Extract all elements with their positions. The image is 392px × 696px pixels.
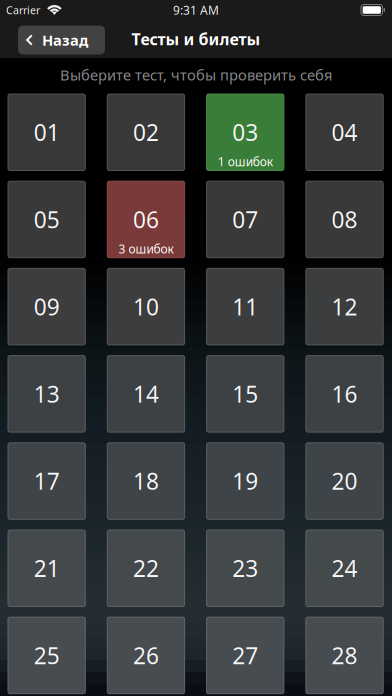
button[interactable]: 24 xyxy=(306,530,383,606)
button[interactable]: 03 xyxy=(207,94,284,170)
staticText: 22 xyxy=(133,553,159,583)
staticText: 18 xyxy=(133,466,159,496)
button[interactable]: 01 xyxy=(8,94,85,170)
staticText: 17 xyxy=(34,466,60,496)
staticText: 28 xyxy=(331,640,357,670)
staticText: Carrier xyxy=(6,3,40,17)
staticText: 21 xyxy=(34,553,60,583)
button[interactable]: 18 xyxy=(107,443,185,519)
button[interactable]: 14 xyxy=(107,356,185,432)
button[interactable]: 04 xyxy=(306,94,383,170)
staticText: Назад xyxy=(42,30,88,50)
button[interactable]: 09 xyxy=(8,268,85,345)
button[interactable]: 02 xyxy=(107,94,185,170)
button[interactable]: 16 xyxy=(306,356,383,432)
staticText: 15 xyxy=(232,379,258,409)
staticText: 06 xyxy=(133,204,159,234)
button[interactable]: 10 xyxy=(107,268,185,345)
staticText: 1 ошибок xyxy=(218,154,273,169)
button[interactable]: 05 xyxy=(8,181,85,258)
button[interactable]: 12 xyxy=(306,268,383,345)
staticText: 9:31 AM xyxy=(173,2,219,18)
button[interactable]: 11 xyxy=(207,268,284,345)
button[interactable]: 19 xyxy=(207,443,284,519)
staticText: 25 xyxy=(34,640,60,670)
staticText: 04 xyxy=(331,117,357,147)
button[interactable]: 20 xyxy=(306,443,383,519)
staticText: 07 xyxy=(232,204,258,234)
staticText: 02 xyxy=(133,117,159,147)
button[interactable]: 13 xyxy=(8,356,85,432)
staticText: 26 xyxy=(133,640,159,670)
staticText: 08 xyxy=(331,204,357,234)
button[interactable]: Назад xyxy=(18,23,105,54)
staticText: 20 xyxy=(331,466,357,496)
staticText: 16 xyxy=(331,379,357,409)
button[interactable]: 28 xyxy=(306,617,383,694)
staticText: 12 xyxy=(331,292,357,322)
staticText: 10 xyxy=(133,292,159,322)
staticText: 13 xyxy=(34,379,60,409)
button[interactable]: 22 xyxy=(107,530,185,606)
staticText: 27 xyxy=(232,640,258,670)
button[interactable]: 27 xyxy=(207,617,284,694)
staticText: 01 xyxy=(34,117,60,147)
staticText: 11 xyxy=(232,292,258,322)
button[interactable]: 06 xyxy=(107,181,185,258)
staticText: 05 xyxy=(34,204,60,234)
staticText: 24 xyxy=(331,553,357,583)
staticText: 14 xyxy=(133,379,159,409)
button[interactable]: 21 xyxy=(8,530,85,606)
staticText: 3 ошибок xyxy=(118,241,173,257)
button[interactable]: 23 xyxy=(207,530,284,606)
staticText: Тесты и билеты xyxy=(131,28,260,50)
staticText: 09 xyxy=(34,292,60,322)
button[interactable]: 07 xyxy=(207,181,284,258)
staticText: 23 xyxy=(232,553,258,583)
button[interactable]: 15 xyxy=(207,356,284,432)
button[interactable]: 25 xyxy=(8,617,85,694)
staticText: Выберите тест, чтобы проверить себя xyxy=(60,65,332,84)
button[interactable]: 08 xyxy=(306,181,383,258)
button[interactable]: 26 xyxy=(107,617,185,694)
staticText: 03 xyxy=(232,117,258,147)
button[interactable]: 17 xyxy=(8,443,85,519)
staticText: 19 xyxy=(232,466,258,496)
